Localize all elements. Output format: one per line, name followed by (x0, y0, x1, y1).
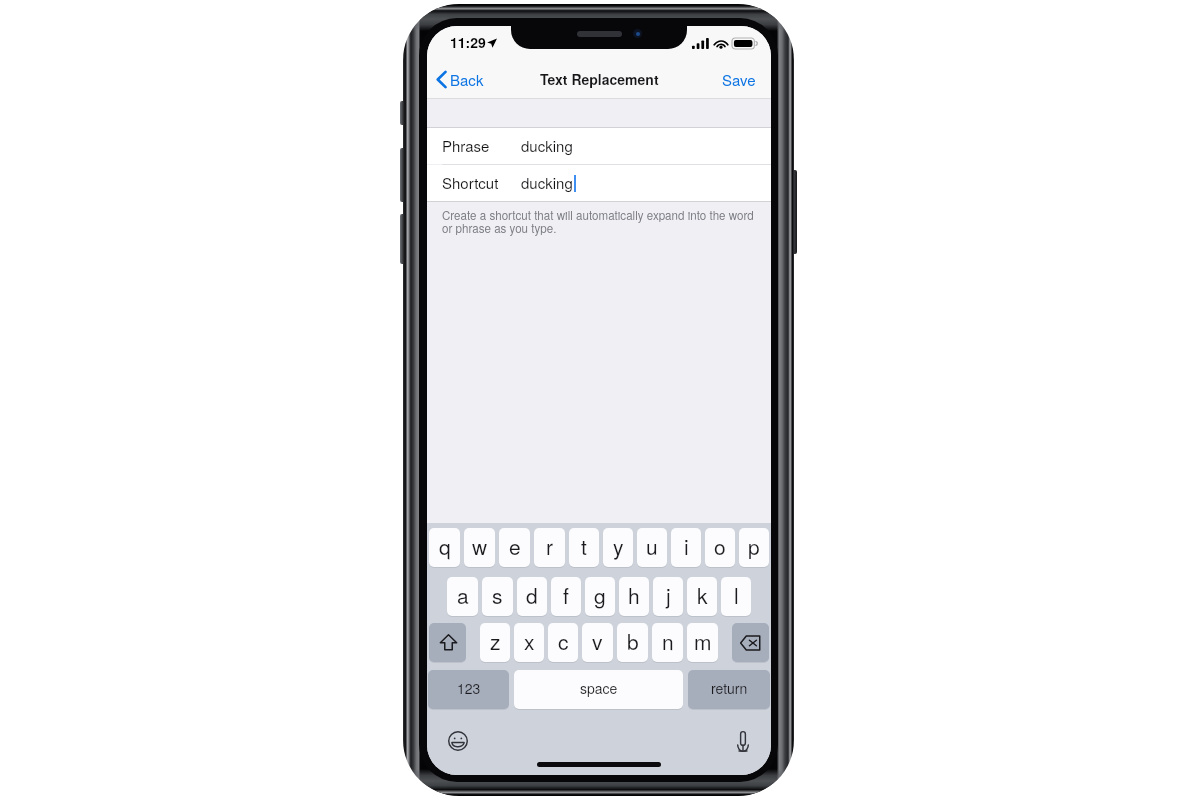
staticText: return (711, 678, 748, 698)
button[interactable]: y (603, 528, 633, 567)
staticText: Back (450, 69, 484, 90)
button[interactable]: s (482, 577, 513, 616)
staticText: a (457, 580, 469, 610)
staticText: g (594, 580, 606, 610)
staticText: t (581, 531, 587, 561)
button[interactable]: m (687, 623, 718, 662)
button[interactable]: Save (707, 64, 771, 98)
button[interactable]: e (499, 528, 530, 567)
staticText: j (666, 580, 671, 610)
button[interactable]: k (687, 577, 717, 616)
staticText: Text Replacement (540, 69, 659, 89)
staticText: c (558, 626, 569, 656)
staticText: s (492, 580, 503, 610)
button[interactable]: g (585, 577, 615, 616)
staticText: v (592, 626, 603, 656)
button[interactable]: d (517, 577, 547, 616)
button[interactable]: Shortcut (427, 165, 771, 201)
staticText: q (439, 531, 451, 561)
button[interactable]: q (429, 528, 460, 567)
button[interactable]: w (464, 528, 495, 567)
button[interactable]: j (653, 577, 683, 616)
button[interactable]: l (721, 577, 751, 616)
staticText: e (509, 531, 521, 561)
staticText: y (613, 531, 624, 561)
button[interactable] (429, 623, 466, 662)
button[interactable]: u (637, 528, 667, 567)
staticText: l (734, 580, 739, 610)
button[interactable]: Emoji keyboard (446, 729, 470, 753)
staticText: ducking (521, 172, 573, 193)
staticText: w (472, 531, 488, 561)
button[interactable]: Phrase (427, 128, 771, 164)
staticText: n (662, 626, 674, 656)
button[interactable]: v (582, 623, 613, 662)
staticText: d (526, 580, 538, 610)
staticText: f (563, 580, 569, 610)
staticText: h (628, 580, 640, 610)
staticText: p (748, 531, 760, 561)
button[interactable]: p (739, 528, 769, 567)
other: Backspace (732, 623, 769, 662)
button[interactable] (732, 623, 769, 662)
button[interactable]: Dictation (731, 729, 755, 753)
staticText: z (490, 626, 501, 656)
staticText: b (627, 626, 639, 656)
staticText: Phrase (442, 135, 490, 156)
staticText: x (524, 626, 535, 656)
staticText: space (580, 678, 618, 698)
staticText: Save (722, 69, 756, 90)
button[interactable]: space (514, 670, 683, 709)
staticText: m (694, 626, 712, 656)
staticText: 123 (457, 678, 481, 698)
button[interactable]: b (617, 623, 648, 662)
button[interactable]: c (548, 623, 578, 662)
staticText: u (646, 531, 658, 561)
button[interactable]: z (480, 623, 510, 662)
button[interactable]: n (652, 623, 683, 662)
other: Shift (429, 623, 466, 662)
staticText: Create a shortcut that will automaticall… (442, 207, 754, 236)
button[interactable]: h (619, 577, 649, 616)
button[interactable]: return (688, 670, 770, 709)
staticText: 11:29 (450, 32, 486, 52)
staticText: k (697, 580, 708, 610)
button[interactable]: i (671, 528, 701, 567)
staticText: o (714, 531, 726, 561)
button[interactable]: t (569, 528, 599, 567)
staticText: r (546, 531, 553, 561)
button[interactable]: o (705, 528, 735, 567)
button[interactable]: 123 (428, 670, 509, 709)
button[interactable]: r (534, 528, 565, 567)
button[interactable]: f (551, 577, 581, 616)
staticText: Shortcut (442, 172, 499, 193)
button[interactable]: x (514, 623, 544, 662)
staticText: ducking (521, 135, 573, 156)
button[interactable]: Back (427, 64, 494, 98)
button[interactable]: a (447, 577, 478, 616)
staticText: i (684, 531, 689, 561)
